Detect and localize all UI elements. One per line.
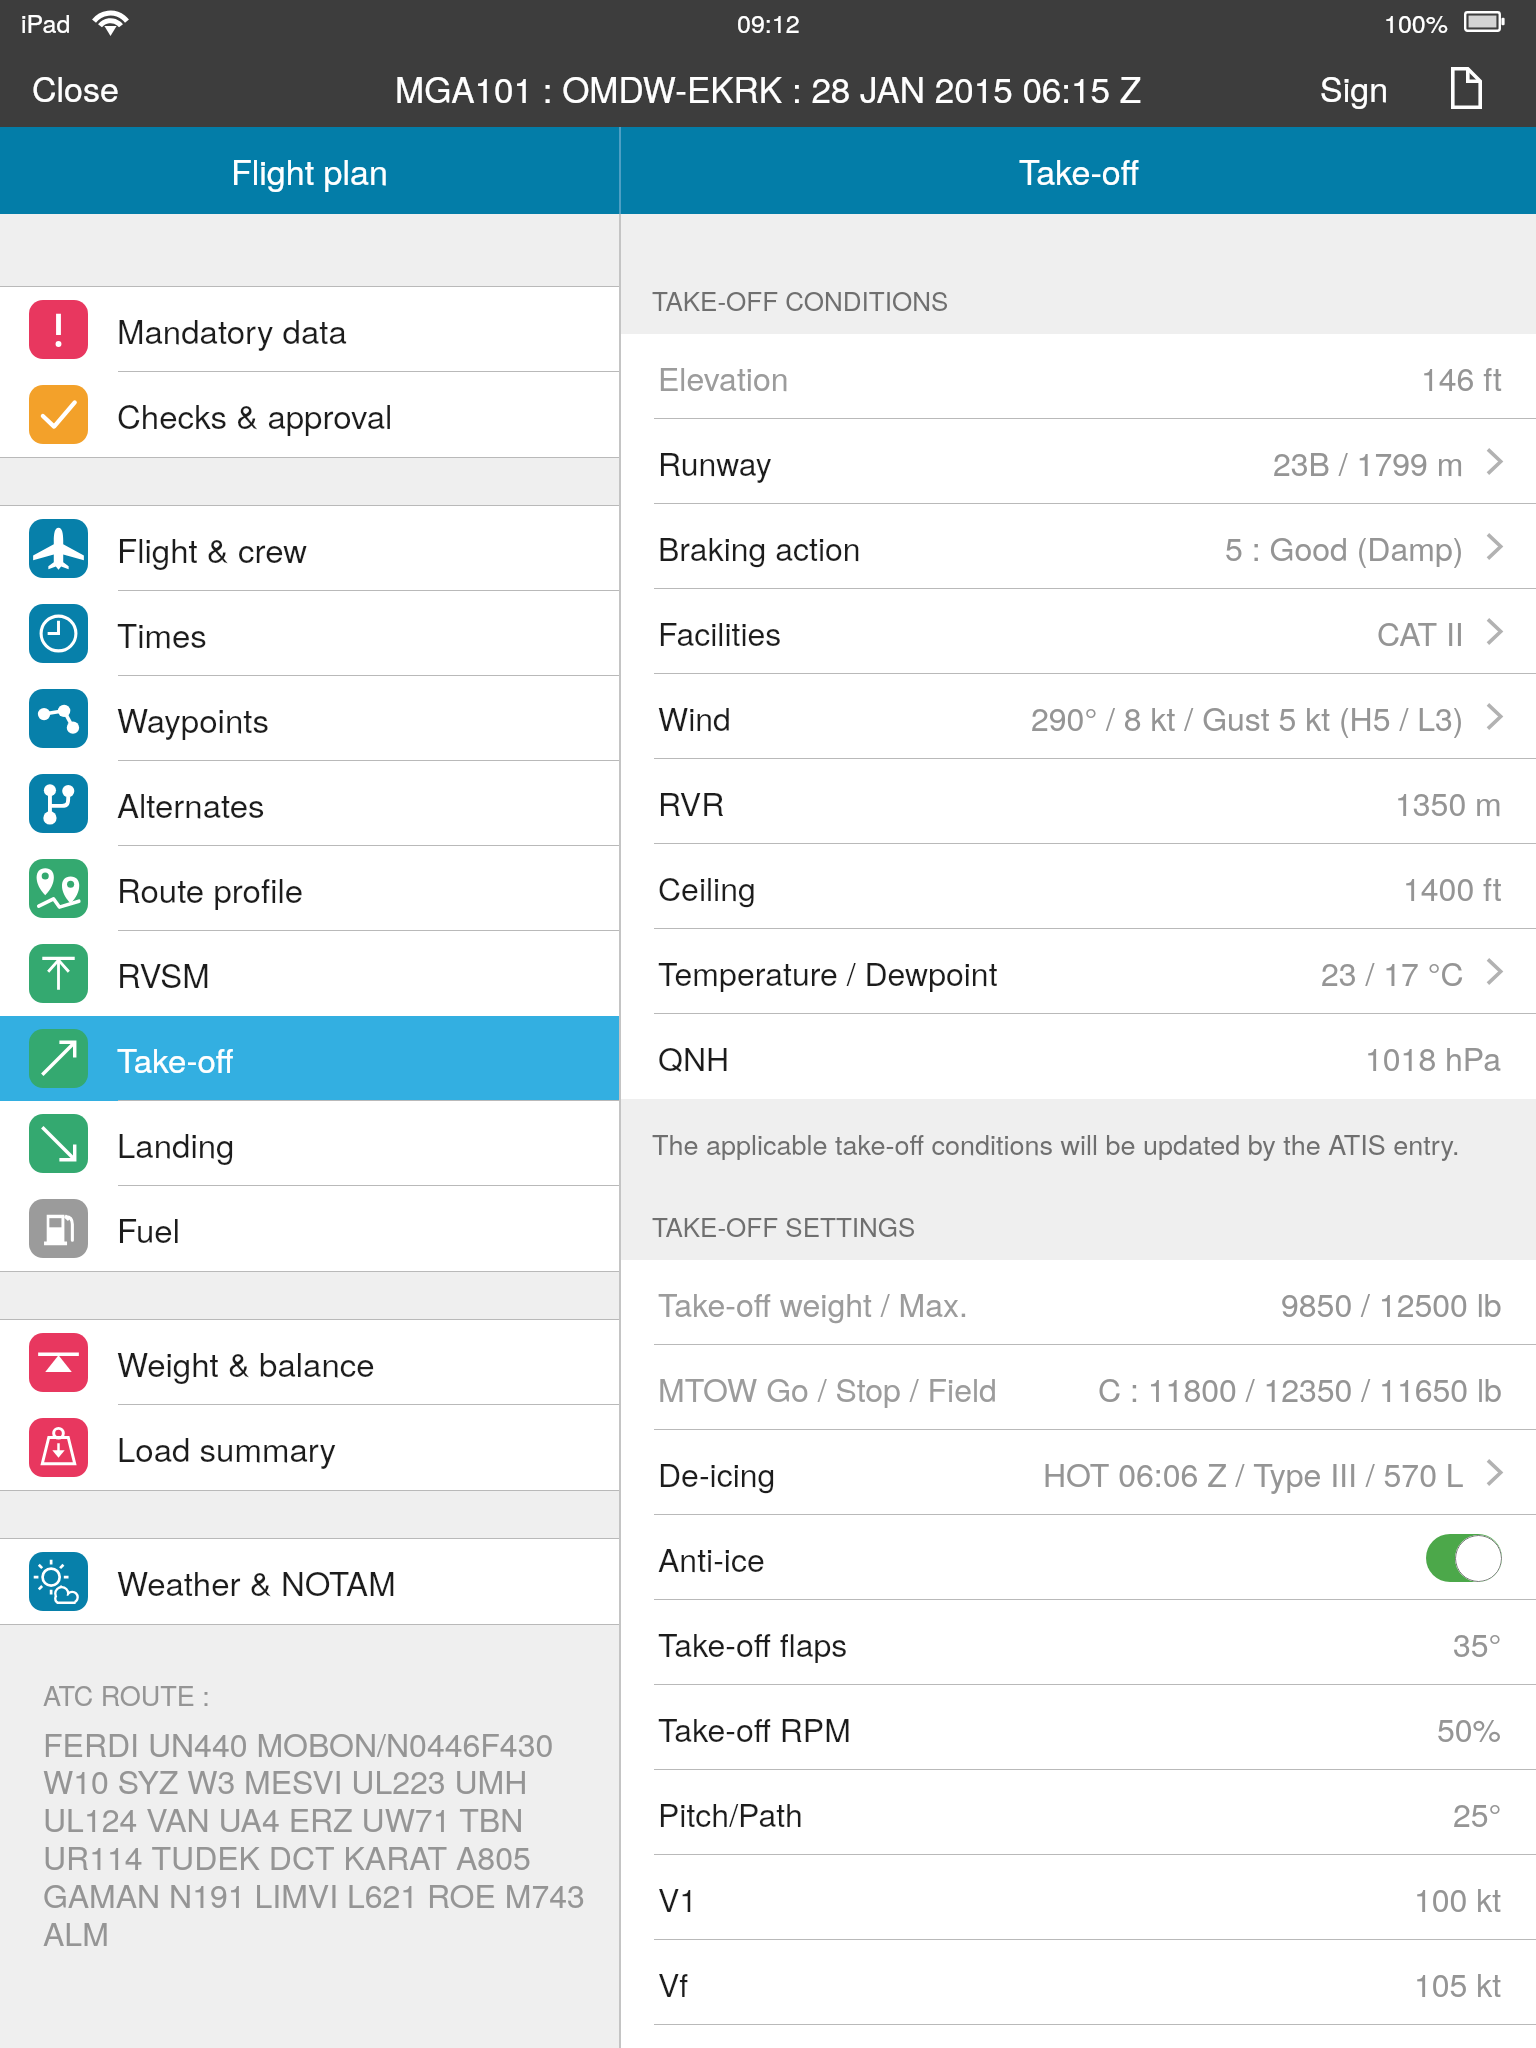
staticText: RVR — [658, 779, 725, 825]
staticText: Vf — [658, 1960, 689, 2006]
staticText: 23B / 1799 m — [1273, 439, 1464, 485]
staticText: 100 kt — [1414, 1875, 1502, 1921]
button[interactable]: RVR — [621, 759, 1536, 844]
button[interactable]: Take-off — [0, 1016, 619, 1101]
button[interactable]: Load summary — [0, 1405, 619, 1490]
staticText: Mandatory data — [117, 306, 347, 353]
staticText: Take-off — [1019, 146, 1139, 195]
staticText: Elevation — [658, 354, 789, 400]
button[interactable]: Facilities — [621, 589, 1536, 674]
staticText: The applicable take-off conditions will … — [652, 1124, 1460, 1163]
button[interactable]: De-icing — [621, 1430, 1536, 1515]
button[interactable]: Sign — [1314, 53, 1395, 122]
staticText: Close — [32, 63, 119, 112]
button[interactable]: Fuel — [0, 1186, 619, 1271]
staticText: Anti-ice — [658, 1535, 765, 1581]
button[interactable]: Anti-ice — [621, 1515, 1536, 1600]
button[interactable]: Pitch/Path — [621, 1770, 1536, 1855]
button[interactable]: Anti-ice toggle — [1426, 1534, 1502, 1582]
staticText: Times — [117, 610, 207, 657]
button[interactable]: Take-off RPM — [621, 1685, 1536, 1770]
staticText: TAKE-OFF SETTINGS — [652, 1207, 916, 1244]
button[interactable]: Ceiling — [621, 844, 1536, 929]
staticText: RVSM — [117, 950, 210, 997]
staticText: Weather & NOTAM — [117, 1558, 396, 1605]
staticText: Take-off flaps — [658, 1620, 848, 1666]
staticText: Temperature / Dewpoint — [658, 949, 998, 995]
button[interactable]: Wind — [621, 674, 1536, 759]
button[interactable]: Alternates — [0, 761, 619, 846]
staticText: MTOW Go / Stop / Field — [658, 1365, 997, 1411]
staticText: Flight & crew — [117, 525, 308, 572]
button[interactable]: MTOW Go / Stop / Field — [621, 1345, 1536, 1430]
button[interactable]: Times — [0, 591, 619, 676]
staticText: iPad — [21, 4, 71, 40]
button[interactable]: Runway — [621, 419, 1536, 504]
staticText: Waypoints — [117, 695, 269, 742]
button[interactable]: Take-off — [621, 127, 1536, 214]
staticText: Alternates — [117, 780, 265, 827]
staticText: 50% — [1437, 1705, 1502, 1751]
button[interactable]: Elevation — [621, 334, 1536, 419]
button[interactable]: Document — [1447, 63, 1486, 113]
button[interactable]: Vf — [621, 1940, 1536, 2025]
button[interactable]: Weight & balance — [0, 1320, 619, 1405]
staticText: Facilities — [658, 609, 782, 655]
staticText: Route profile — [117, 865, 304, 912]
staticText: MGA101 : OMDW-EKRK : 28 JAN 2015 06:15 Z — [395, 63, 1142, 113]
button[interactable]: RVSM — [0, 931, 619, 1016]
staticText: 5 : Good (Damp) — [1225, 524, 1464, 570]
staticText: Sign — [1320, 63, 1389, 112]
button[interactable]: Flight plan — [0, 127, 619, 214]
staticText: 25° — [1453, 1790, 1502, 1836]
staticText: Pitch/Path — [658, 1790, 803, 1836]
button[interactable]: Weather & NOTAM — [0, 1539, 619, 1624]
staticText: FERDI UN440 MOBON/N0446F430 W10 SYZ W3 M… — [43, 1720, 609, 1956]
staticText: TAKE-OFF CONDITIONS — [652, 281, 949, 318]
button[interactable]: Close — [26, 53, 125, 122]
staticText: Runway — [658, 439, 772, 485]
staticText: C : 11800 / 12350 / 11650 lb — [1098, 1365, 1502, 1411]
staticText: Weight & balance — [117, 1339, 375, 1386]
button[interactable]: Landing — [0, 1101, 619, 1186]
staticText: Load summary — [117, 1424, 337, 1471]
button[interactable]: Flight & crew — [0, 506, 619, 591]
staticText: CAT II — [1377, 609, 1464, 655]
staticText: 9850 / 12500 lb — [1281, 1280, 1502, 1326]
staticText: HOT 06:06 Z / Type III / 570 L — [1043, 1450, 1464, 1496]
button[interactable]: Take-off flaps — [621, 1600, 1536, 1685]
button[interactable]: QNH — [621, 1014, 1536, 1099]
staticText: 09:12 — [737, 4, 800, 40]
button[interactable]: Temperature / Dewpoint — [621, 929, 1536, 1014]
staticText: Take-off — [117, 1035, 234, 1082]
button[interactable]: V1 — [621, 1855, 1536, 1940]
staticText: Take-off weight / Max. — [658, 1280, 968, 1326]
staticText: 1018 hPa — [1365, 1034, 1502, 1080]
staticText: 105 kt — [1414, 1960, 1502, 2006]
staticText: Landing — [117, 1120, 235, 1167]
button[interactable]: Braking action — [621, 504, 1536, 589]
button[interactable]: Mandatory data — [0, 287, 619, 372]
staticText: Ceiling — [658, 864, 756, 910]
staticText: 146 ft — [1421, 354, 1502, 400]
staticText: Flight plan — [231, 146, 388, 195]
staticText: Braking action — [658, 524, 861, 570]
button[interactable]: Route profile — [0, 846, 619, 931]
staticText: De-icing — [658, 1450, 776, 1496]
staticText: Wind — [658, 694, 731, 740]
staticText: Take-off RPM — [658, 1705, 851, 1751]
button[interactable]: Take-off weight / Max. — [621, 1260, 1536, 1345]
button[interactable]: Waypoints — [0, 676, 619, 761]
staticText: 23 / 17 °C — [1321, 949, 1464, 995]
button[interactable]: Checks & approval — [0, 372, 619, 457]
staticText: V1 — [658, 1875, 698, 1921]
staticText: QNH — [658, 1034, 730, 1080]
staticText: 1400 ft — [1403, 864, 1502, 910]
staticText: Fuel — [117, 1205, 181, 1252]
staticText: 100% — [1384, 4, 1448, 40]
staticText: 290° / 8 kt / Gust 5 kt (H5 / L3) — [1031, 694, 1464, 740]
staticText: 1350 m — [1395, 779, 1502, 825]
staticText: 35° — [1453, 1620, 1502, 1666]
staticText: Checks & approval — [117, 391, 393, 438]
staticText: ATC ROUTE : — [43, 1675, 210, 1714]
